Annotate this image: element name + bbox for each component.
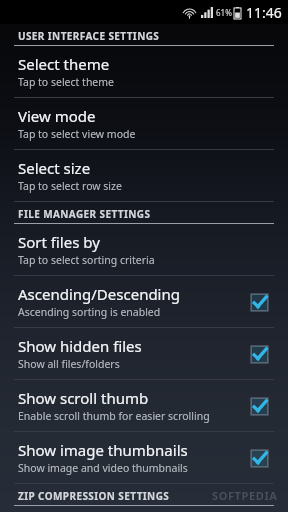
staticText: ZIP COMPRESSION SETTINGS <box>18 489 170 503</box>
staticText: Tap to select row size <box>18 179 122 193</box>
staticText: 61% <box>216 7 232 18</box>
button[interactable]: Ascending/Descending <box>0 276 288 327</box>
button[interactable]: Toggle Show image thumbnails <box>244 443 274 473</box>
staticText: Select size <box>18 158 91 178</box>
staticText: Show image and video thumbnails <box>18 461 188 475</box>
staticText: USER INTERFACE SETTINGS <box>18 29 160 43</box>
staticText: Sort files by <box>18 232 100 252</box>
staticText: 11:46 <box>246 3 282 22</box>
staticText: Tap to select theme <box>18 75 115 89</box>
button[interactable]: Select theme <box>0 46 288 97</box>
staticText: Show hidden files <box>18 336 142 356</box>
button[interactable]: Select size <box>0 150 288 201</box>
button[interactable]: Show hidden files <box>0 328 288 379</box>
staticText: Show all files/folders <box>18 357 120 371</box>
staticText: Tap to select view mode <box>18 127 136 141</box>
staticText: Enable scroll thumb for easier scrolling <box>18 409 210 423</box>
button[interactable]: View mode <box>0 98 288 149</box>
button[interactable]: Sort files by <box>0 224 288 275</box>
staticText: FILE MANAGER SETTINGS <box>18 207 151 221</box>
staticText: Select theme <box>18 54 110 74</box>
staticText: Tap to select sorting criteria <box>18 253 155 267</box>
button[interactable]: Toggle Show hidden files <box>244 339 274 369</box>
staticText: Show image thumbnails <box>18 440 188 460</box>
button[interactable]: Show image thumbnails <box>0 432 288 483</box>
staticText: Show scroll thumb <box>18 388 149 408</box>
staticText: Ascending/Descending <box>18 284 180 304</box>
staticText: SOFTPEDIA <box>212 488 278 503</box>
button[interactable]: Toggle Ascending/Descending <box>244 287 274 317</box>
button[interactable]: Toggle Show scroll thumb <box>244 391 274 421</box>
staticText: View mode <box>18 106 96 126</box>
button[interactable]: Show scroll thumb <box>0 380 288 431</box>
staticText: Ascending sorting is enabled <box>18 305 161 319</box>
